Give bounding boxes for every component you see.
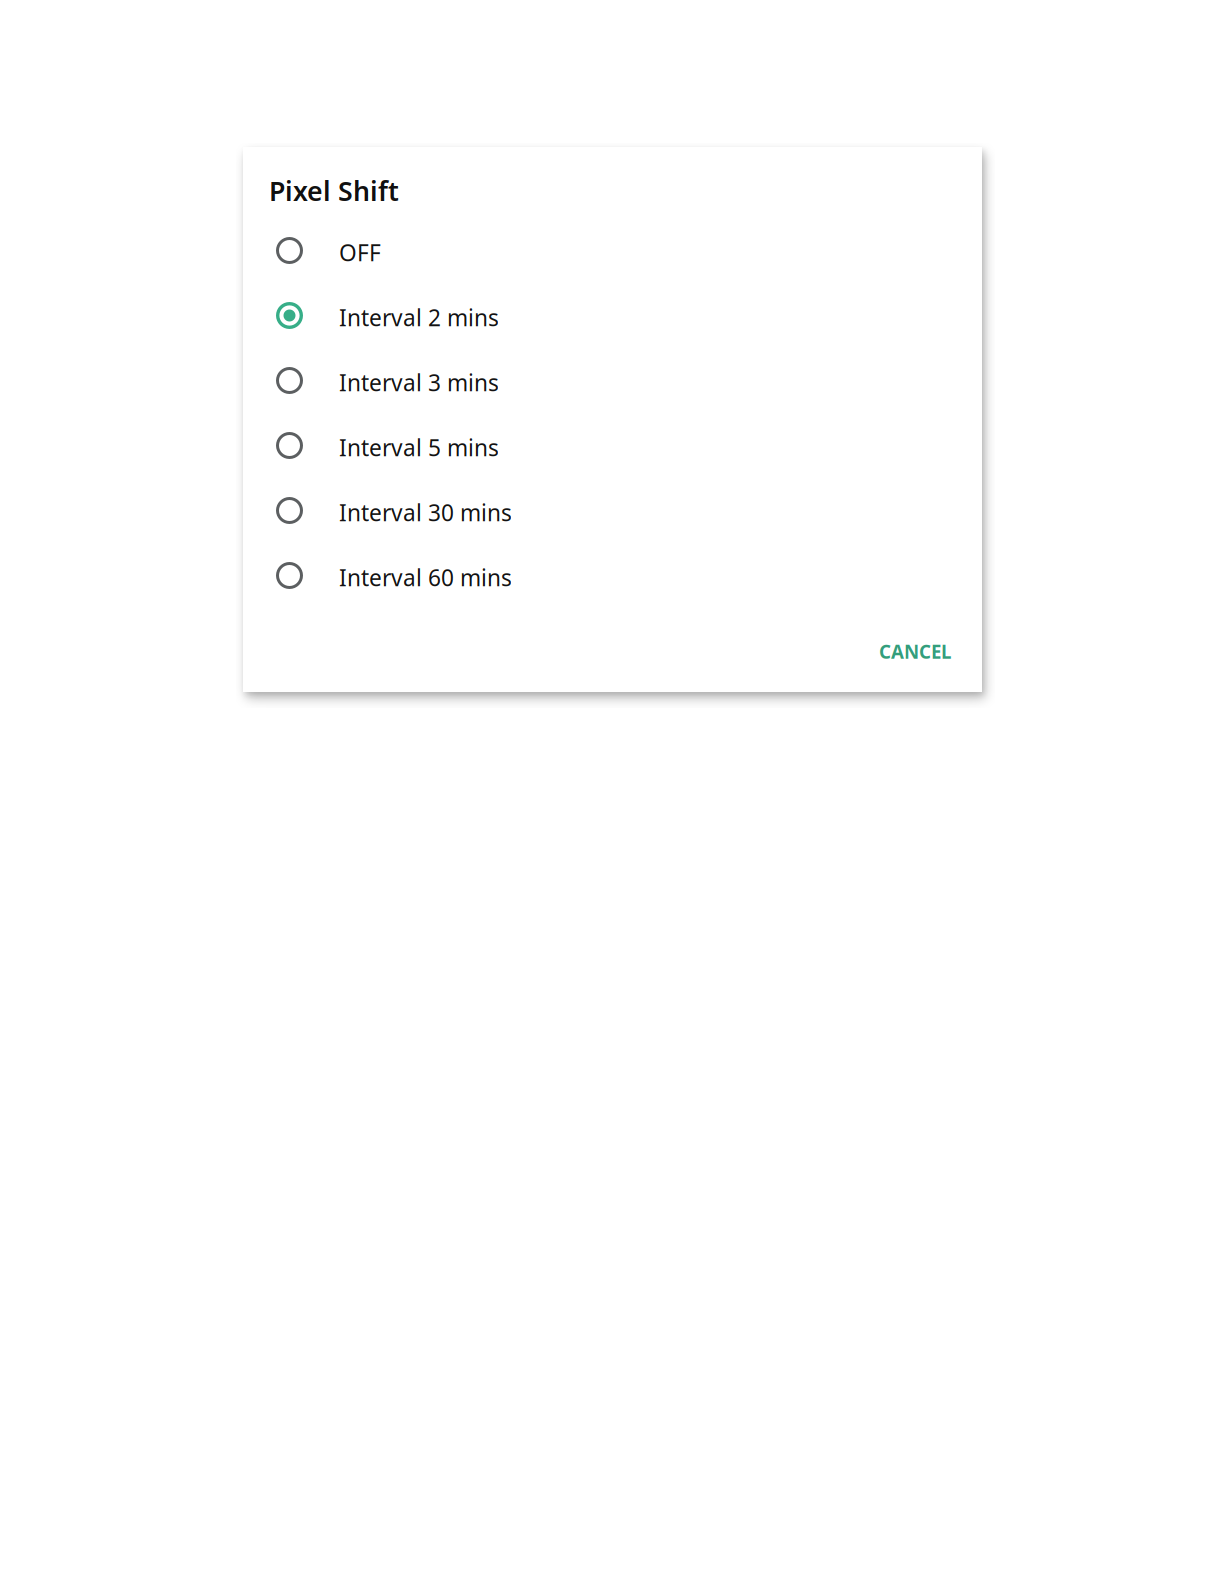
staticText: CANCEL bbox=[879, 639, 951, 664]
staticText: Interval 30 mins bbox=[339, 497, 512, 527]
button[interactable]: Not selected bbox=[243, 218, 982, 283]
button[interactable]: CANCEL bbox=[863, 627, 967, 676]
staticText: Interval 2 mins bbox=[339, 302, 499, 332]
staticText: Interval 60 mins bbox=[339, 562, 512, 592]
staticText: OFF bbox=[339, 237, 381, 267]
button[interactable]: Not selected bbox=[243, 543, 982, 608]
staticText: Interval 5 mins bbox=[339, 432, 499, 462]
button[interactable]: Selected bbox=[243, 283, 982, 348]
button[interactable]: Not selected bbox=[243, 413, 982, 478]
button[interactable]: Not selected bbox=[243, 348, 982, 413]
button[interactable]: Not selected bbox=[243, 478, 982, 543]
staticText: Pixel Shift bbox=[269, 173, 399, 208]
staticText: Interval 3 mins bbox=[339, 367, 499, 397]
